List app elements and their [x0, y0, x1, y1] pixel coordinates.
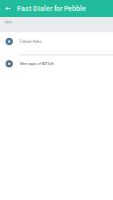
staticText: Tutorial Video: [19, 39, 41, 44]
button[interactable]: Tutorial Video: [0, 32, 113, 54]
staticText: Fast Dialer for Pebble: [17, 4, 86, 13]
staticText: Other apps of NDTSoft: [19, 62, 53, 66]
button[interactable]: Back: [0, 0, 16, 17]
button[interactable]: Other apps of NDTSoft: [0, 55, 113, 77]
staticText: About: [5, 21, 12, 24]
